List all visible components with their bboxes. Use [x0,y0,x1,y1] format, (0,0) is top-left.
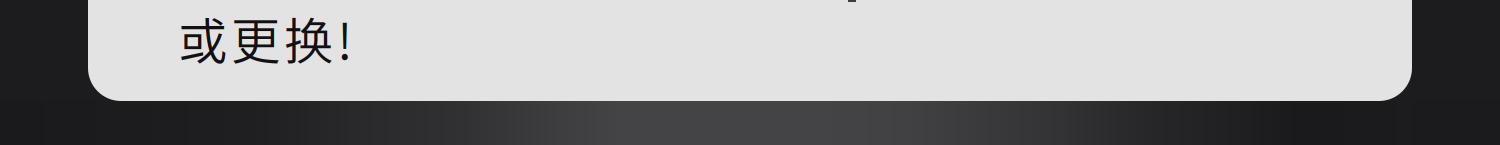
staticText: ! [337,2,352,73]
staticText: 换 [284,2,333,73]
button[interactable]: 或 [88,0,1412,101]
staticText: 更 [231,2,280,73]
staticText: 或 [178,2,227,73]
